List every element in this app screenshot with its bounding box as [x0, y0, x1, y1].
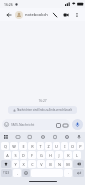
staticText: S: [14, 153, 17, 158]
staticText: Y: [14, 162, 17, 167]
button[interactable]: Settings: [63, 133, 71, 141]
button[interactable]: Backspace: [73, 160, 84, 168]
staticText: 16:27: [38, 99, 47, 103]
staticText: W: [12, 144, 16, 149]
button[interactable]: T: [37, 142, 44, 150]
button[interactable]: A: [4, 151, 11, 159]
button[interactable]: W: [10, 142, 18, 150]
staticText: N: [58, 162, 61, 167]
staticText: C: [31, 162, 34, 167]
button[interactable]: Call: [49, 9, 60, 20]
staticText: O: [71, 144, 74, 149]
button[interactable]: .: [64, 169, 72, 177]
staticText: I: [64, 144, 66, 149]
staticText: B: [49, 162, 52, 167]
button[interactable]: G: [37, 151, 45, 159]
button[interactable]: GIF: [14, 133, 22, 141]
staticText: Q: [4, 144, 7, 149]
button[interactable]: Enter: [73, 169, 84, 177]
staticText: P: [79, 144, 82, 149]
button[interactable]: Voice input: [75, 133, 83, 141]
button[interactable]: Sticker: [26, 133, 34, 141]
staticText: R: [31, 144, 34, 149]
button[interactable]: Back: [3, 9, 14, 20]
button[interactable]: Nachrichten sind Ende-zu-Ende-verschlüss…: [8, 106, 77, 114]
button[interactable]: Video call: [60, 9, 71, 20]
button[interactable]: B: [46, 160, 54, 168]
button[interactable]: X: [20, 160, 27, 168]
button[interactable]: D: [20, 151, 27, 159]
button[interactable]: Camera: [62, 122, 68, 128]
button[interactable]: Translate: [39, 133, 47, 141]
button[interactable]: J: [55, 151, 63, 159]
button[interactable]: Q: [1, 142, 9, 150]
staticText: D: [22, 153, 25, 158]
staticText: J: [58, 153, 60, 158]
staticText: E: [22, 144, 25, 149]
button[interactable]: Emoji: [22, 169, 30, 177]
button[interactable]: notebookcheck...: [25, 12, 49, 17]
button[interactable]: More options: [71, 9, 82, 20]
button[interactable]: L: [73, 151, 81, 159]
staticText: 16:26: [4, 2, 13, 7]
button[interactable]: Keyboard layout: [2, 133, 10, 141]
button[interactable]: F: [28, 151, 36, 159]
staticText: F: [31, 153, 33, 158]
button[interactable]: [15, 11, 23, 19]
button[interactable]: H: [46, 151, 54, 159]
button[interactable]: V: [37, 160, 45, 168]
button[interactable]: ?123: [1, 169, 12, 177]
button[interactable]: ,: [13, 169, 21, 177]
staticText: M: [66, 162, 70, 167]
button[interactable]: SMS-Nachricht: [2, 119, 70, 130]
button[interactable]: Voice message: [72, 119, 83, 130]
button[interactable]: Shift: [1, 160, 11, 168]
button[interactable]: Clipboard: [51, 133, 59, 141]
button[interactable]: Attach image: [55, 122, 61, 128]
staticText: K: [67, 153, 70, 158]
button[interactable]: E: [19, 142, 27, 150]
staticText: .: [68, 171, 69, 175]
staticText: L: [76, 153, 78, 158]
button[interactable]: S: [12, 151, 19, 159]
button[interactable]: O: [69, 142, 76, 150]
button[interactable]: U: [53, 142, 60, 150]
button[interactable]: N: [55, 160, 63, 168]
button[interactable]: R: [28, 142, 36, 150]
staticText: T: [39, 144, 42, 149]
button[interactable]: Z: [45, 142, 52, 150]
staticText: G: [40, 153, 43, 158]
staticText: SMS-Nachricht: [11, 122, 55, 127]
button[interactable]: Y: [12, 160, 19, 168]
staticText: Nachrichten sind Ende-zu-Ende-verschlüss…: [17, 108, 72, 112]
button[interactable]: K: [64, 151, 72, 159]
staticText: Z: [47, 144, 50, 149]
button[interactable]: C: [28, 160, 36, 168]
staticText: ,: [17, 171, 18, 175]
staticText: A: [6, 153, 9, 158]
staticText: U: [55, 144, 58, 149]
button[interactable]: I: [61, 142, 68, 150]
staticText: H: [49, 153, 52, 158]
button[interactable]: M: [64, 160, 72, 168]
button[interactable]: P: [77, 142, 84, 150]
staticText: V: [40, 162, 43, 167]
staticText: ?123: [3, 171, 10, 175]
staticText: X: [22, 162, 25, 167]
